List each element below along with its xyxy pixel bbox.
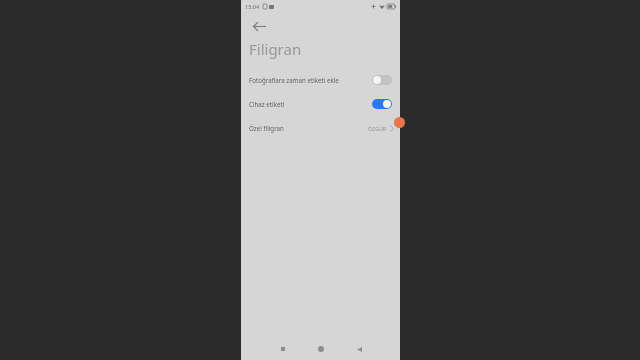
staticText: Cihaz etiketi xyxy=(249,100,372,108)
staticText: Özel filigran xyxy=(249,124,368,132)
button[interactable]: Back xyxy=(246,17,272,35)
button[interactable]: Home xyxy=(309,338,333,360)
button[interactable]: Özel filigran xyxy=(241,116,400,140)
button[interactable]: Off xyxy=(372,75,392,85)
staticText: ÖZGÜR xyxy=(368,125,387,132)
button[interactable]: Fotoğraflara zaman etiketi ekle xyxy=(241,68,400,92)
staticText: Filigran xyxy=(249,39,302,59)
staticText: 15:04 xyxy=(245,3,260,10)
button[interactable]: On xyxy=(372,99,392,109)
button[interactable]: Back xyxy=(347,338,371,360)
button[interactable]: Cihaz etiketi xyxy=(241,92,400,116)
button[interactable]: Recents xyxy=(271,338,295,360)
staticText: Fotoğraflara zaman etiketi ekle xyxy=(249,76,372,84)
